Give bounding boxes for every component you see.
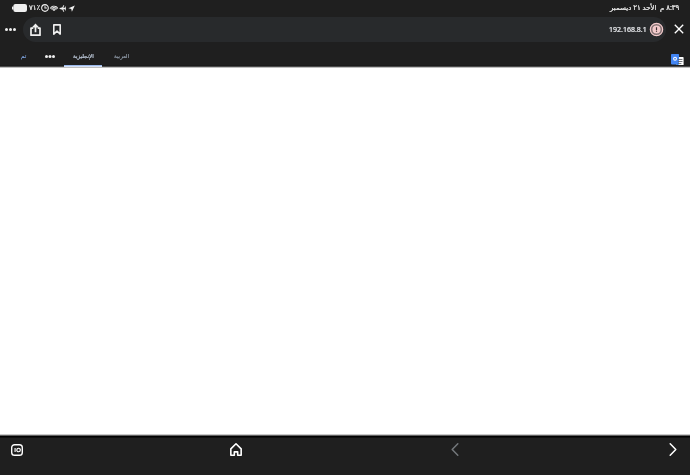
button[interactable]: Site information bbox=[650, 23, 663, 36]
button[interactable]: Translate settings bbox=[41, 47, 59, 65]
staticText: الإنجليزية bbox=[73, 53, 94, 59]
button[interactable]: Bookmark bbox=[47, 20, 66, 39]
button[interactable]: الإنجليزية bbox=[64, 45, 102, 67]
button[interactable]: Google Translate bbox=[671, 54, 684, 67]
button[interactable]: Home bbox=[224, 438, 247, 461]
staticText: 192.168.8.1 bbox=[609, 25, 647, 35]
staticText: العربية bbox=[114, 53, 130, 59]
staticText: ٧١٪ bbox=[29, 4, 41, 12]
button[interactable]: العربية bbox=[103, 45, 141, 67]
button[interactable]: Tabs, 10 open bbox=[5, 438, 28, 461]
staticText: تم bbox=[21, 53, 27, 59]
button[interactable]: Share bbox=[26, 20, 45, 39]
button[interactable]: Forward bbox=[661, 438, 684, 461]
button[interactable]: Share bbox=[23, 17, 666, 42]
button[interactable]: Close bbox=[668, 18, 690, 40]
button[interactable]: Back bbox=[443, 438, 466, 461]
button[interactable]: تم bbox=[15, 47, 33, 65]
button[interactable]: More options bbox=[0, 19, 21, 40]
staticText: ٨:٣٩ م الأحد ٢١ ديسمبر bbox=[610, 3, 680, 13]
